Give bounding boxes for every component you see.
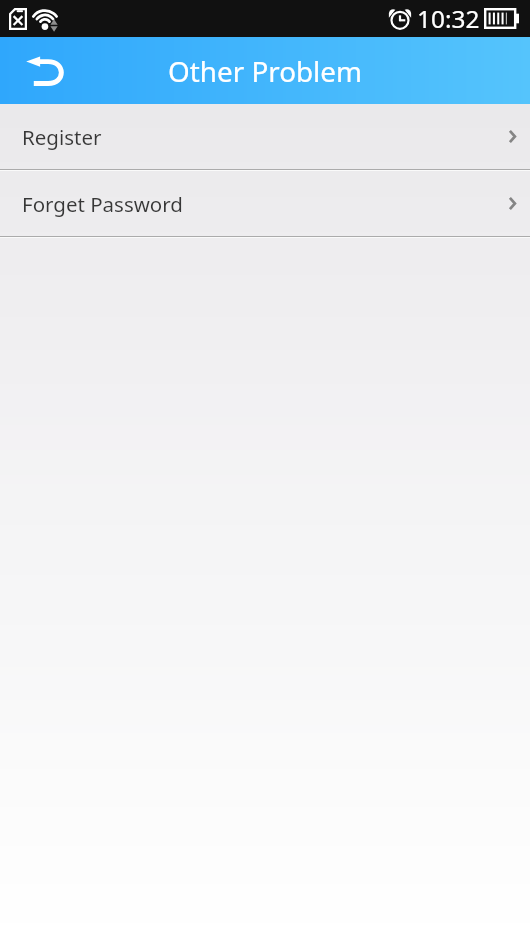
staticText: 10:32: [417, 2, 480, 35]
button[interactable]: Register: [0, 104, 530, 169]
button[interactable]: Back: [0, 37, 89, 104]
button[interactable]: Forget Password: [0, 171, 530, 236]
staticText: Forget Password: [22, 190, 183, 218]
staticText: Other Problem: [168, 52, 362, 90]
staticText: Register: [22, 123, 102, 151]
